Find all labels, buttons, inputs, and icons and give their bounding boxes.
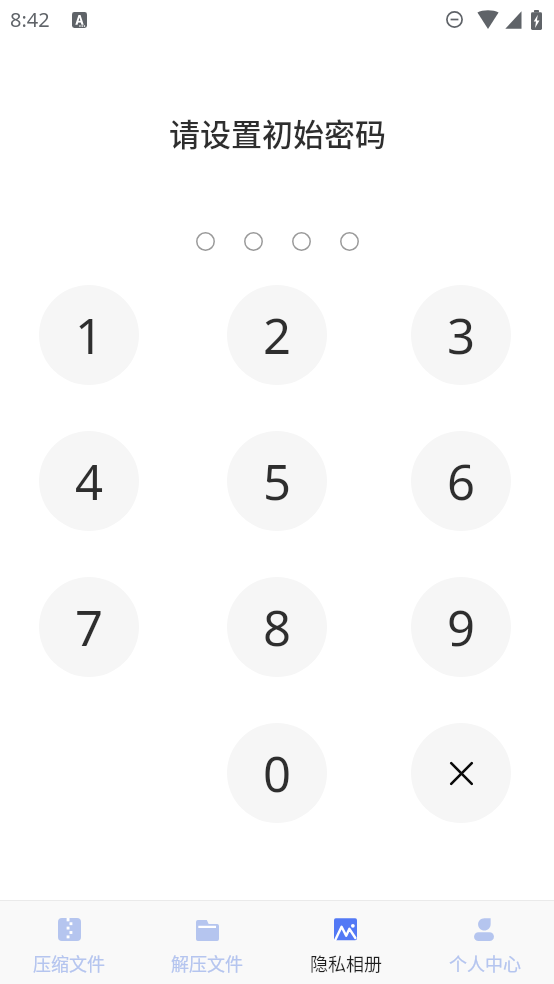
staticText: 隐私相册 — [310, 950, 382, 976]
button[interactable]: 1 — [39, 285, 139, 385]
button[interactable]: 2 — [227, 285, 327, 385]
staticText: 解压文件 — [171, 950, 243, 976]
staticText: 9 — [447, 594, 476, 661]
staticText: 3 — [447, 302, 476, 369]
staticText: 8 — [263, 594, 292, 661]
staticText: 2 — [263, 302, 292, 369]
staticText: 6 — [447, 448, 476, 515]
button[interactable]: 0 — [227, 723, 327, 823]
button[interactable]: Delete — [411, 723, 511, 823]
button[interactable]: 4 — [39, 431, 139, 531]
button[interactable]: 压缩文件 — [0, 901, 138, 976]
staticText: 8:42 — [10, 6, 50, 33]
staticText: 5 — [263, 448, 292, 515]
button[interactable]: 6 — [411, 431, 511, 531]
staticText: 7 — [75, 594, 104, 661]
button[interactable]: 解压文件 — [138, 901, 276, 976]
staticText: 压缩文件 — [33, 950, 105, 976]
staticText: 0 — [263, 740, 292, 807]
staticText: 1 — [75, 302, 104, 369]
button[interactable]: 隐私相册 — [276, 901, 415, 976]
button[interactable]: 9 — [411, 577, 511, 677]
button[interactable]: 3 — [411, 285, 511, 385]
button[interactable]: 5 — [227, 431, 327, 531]
staticText: 4 — [75, 448, 104, 515]
button[interactable]: 个人中心 — [415, 901, 554, 976]
button[interactable]: 7 — [39, 577, 139, 677]
staticText: 请设置初始密码 — [169, 110, 386, 155]
staticText: 个人中心 — [449, 950, 521, 976]
button[interactable]: 8 — [227, 577, 327, 677]
